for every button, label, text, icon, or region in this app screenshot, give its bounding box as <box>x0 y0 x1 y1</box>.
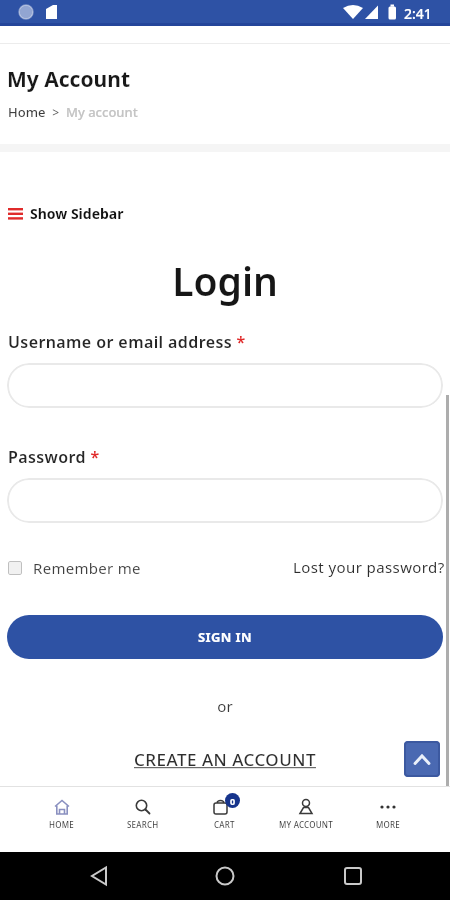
button[interactable]: SEARCH <box>102 787 183 830</box>
button[interactable]: 0 <box>183 787 265 830</box>
button[interactable]: Lost your password? <box>293 557 445 577</box>
staticText: SIGN IN <box>198 628 253 646</box>
button[interactable]: SIGN IN <box>7 615 443 659</box>
staticText: Show Sidebar <box>30 204 124 223</box>
staticText: or <box>0 696 450 716</box>
button[interactable] <box>7 478 443 523</box>
button[interactable]: CREATE AN ACCOUNT <box>134 748 316 771</box>
button[interactable]: MY ACCOUNT <box>265 787 347 830</box>
staticText: Home <box>8 103 46 121</box>
staticText: Username or email address * <box>8 331 246 353</box>
staticText: SEARCH <box>127 819 159 830</box>
button[interactable]: MORE <box>347 787 429 830</box>
staticText: My Account <box>7 65 130 94</box>
button[interactable]: Show Sidebar <box>8 204 124 223</box>
button[interactable]: HOME <box>21 787 102 830</box>
staticText: My account <box>66 103 138 121</box>
staticText: > <box>46 104 66 120</box>
staticText: HOME <box>49 819 74 830</box>
button[interactable] <box>7 363 443 408</box>
staticText: MORE <box>376 819 400 830</box>
button[interactable] <box>404 741 440 777</box>
staticText: 0 <box>230 795 236 807</box>
staticText: Login <box>0 254 450 307</box>
staticText: Password * <box>8 446 100 468</box>
button[interactable]: Remember me <box>8 558 141 578</box>
staticText: 2:41 <box>404 4 432 23</box>
staticText: MY ACCOUNT <box>279 819 333 830</box>
staticText: CART <box>214 819 235 830</box>
staticText: Remember me <box>33 558 141 578</box>
